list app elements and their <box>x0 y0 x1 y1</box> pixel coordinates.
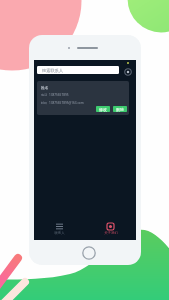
button[interactable]: 关于我们 <box>85 221 136 237</box>
staticText: 姓名 <box>41 85 49 90</box>
staticText: 联系人 <box>54 231 65 235</box>
button[interactable]: 联系人 <box>34 221 85 237</box>
button[interactable]: 搜索联系人 <box>37 66 119 74</box>
button[interactable]: 删除 <box>113 106 127 112</box>
button[interactable]: 姓名 <box>37 81 129 115</box>
staticText: 13875657895@163.com <box>49 101 84 105</box>
staticText: 删除 <box>116 107 124 112</box>
staticText: 修改 <box>99 107 107 112</box>
staticText: 搜索联系人 <box>42 68 63 73</box>
staticText: 邮箱 <box>41 101 48 105</box>
staticText: 13875657895 <box>49 93 69 97</box>
staticText: 关于我们 <box>104 231 118 235</box>
button[interactable]: 修改 <box>96 106 110 112</box>
staticText: 电话 <box>41 93 48 97</box>
button[interactable]: Add contact <box>122 66 133 77</box>
